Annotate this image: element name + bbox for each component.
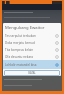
- staticText: Doka merjatu kemud: [5, 41, 35, 45]
- other: Notifications: [2, 1, 10, 4]
- button[interactable]: Tita kompeus kelain: [3, 46, 61, 53]
- staticText: Ofa desuntu nekara: [5, 55, 33, 59]
- button[interactable]: Ofa desuntu nekara: [3, 53, 61, 60]
- button[interactable]: Lohkdir matandel bisa: [3, 60, 61, 69]
- button[interactable]: BATAL: [4, 70, 60, 76]
- button[interactable]: Tes serpulut terbukan: [3, 32, 61, 39]
- button[interactable]: Doka merjatu kemud: [3, 39, 61, 46]
- staticText: Mengukang Ewaitor: [5, 25, 45, 31]
- staticText: Tes serpulut terbukan: [5, 34, 36, 38]
- staticText: Lohkdir matandel bisa: [5, 63, 37, 67]
- staticText: Tita kompeus kelain: [5, 48, 34, 52]
- staticText: BATAL: [28, 71, 36, 75]
